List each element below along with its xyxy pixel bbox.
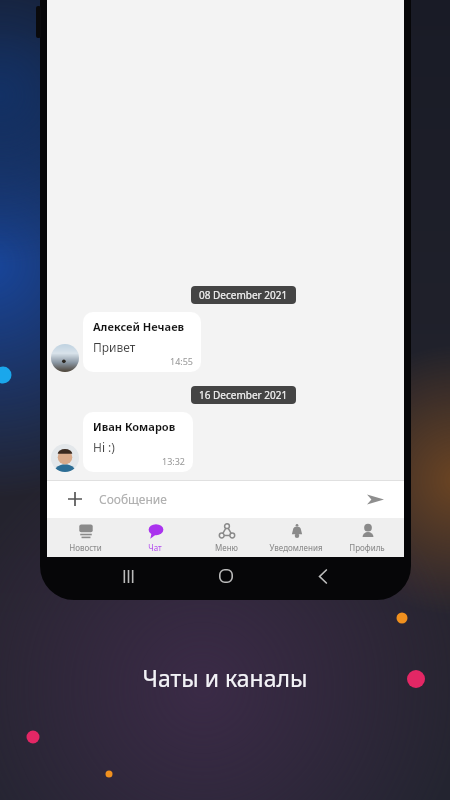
button[interactable]: Алексей Нечаев — [83, 312, 201, 372]
staticText: 08 December 2021 — [199, 288, 288, 302]
staticText: Алексей Нечаев — [93, 319, 185, 334]
button[interactable]: Новости — [52, 518, 118, 557]
staticText: 14:55 — [93, 355, 193, 367]
button[interactable]: Чат — [122, 518, 188, 557]
staticText: Привет — [93, 339, 136, 355]
button[interactable]: Профиль — [334, 518, 400, 557]
staticText: Меню — [215, 542, 238, 553]
button[interactable]: Home — [209, 559, 243, 593]
staticText: Чаты и каналы — [0, 662, 450, 693]
button[interactable]: 16 December 2021 — [191, 386, 296, 404]
staticText: Hi :) — [93, 439, 115, 455]
button[interactable]: Back — [306, 559, 340, 593]
staticText: 13:32 — [93, 455, 185, 467]
staticText: Иван Комаров — [93, 419, 176, 434]
button[interactable]: 08 December 2021 — [191, 286, 296, 304]
staticText: Профиль — [349, 542, 385, 553]
staticText: Чат — [148, 542, 162, 553]
staticText: Сообщение — [99, 491, 167, 507]
button[interactable] — [51, 444, 79, 472]
button[interactable]: Уведомления — [263, 518, 329, 557]
button[interactable]: Сообщение — [99, 491, 360, 507]
staticText: 16 December 2021 — [199, 388, 288, 402]
button[interactable]: Attach — [61, 485, 89, 513]
button[interactable]: Иван Комаров — [83, 412, 193, 472]
staticText: Уведомления — [269, 542, 323, 553]
button[interactable]: Send — [360, 484, 390, 514]
button[interactable] — [51, 344, 79, 372]
button[interactable]: Recents — [111, 559, 145, 593]
button[interactable]: Меню — [193, 518, 259, 557]
staticText: Новости — [69, 542, 102, 553]
